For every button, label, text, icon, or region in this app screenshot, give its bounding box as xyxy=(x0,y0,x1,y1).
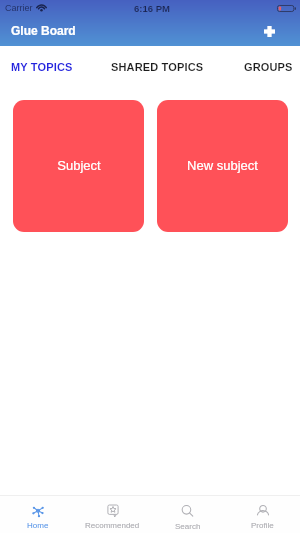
staticText: Home xyxy=(27,521,49,530)
button[interactable]: Add topic xyxy=(258,20,280,42)
button[interactable]: GROUPS xyxy=(224,46,300,88)
button[interactable]: Profile xyxy=(225,496,300,530)
button[interactable]: New subject xyxy=(157,100,288,232)
button[interactable]: SHARED TOPICS xyxy=(92,46,224,88)
button[interactable]: Search xyxy=(150,496,225,531)
staticText: Search xyxy=(175,522,201,531)
staticText: 6:16 PM xyxy=(134,3,170,14)
staticText: Profile xyxy=(251,521,274,530)
button[interactable]: Recommended xyxy=(75,496,150,530)
button[interactable]: Subject xyxy=(13,100,144,232)
staticText: Recommended xyxy=(85,521,140,530)
button[interactable]: MY TOPICS xyxy=(0,46,92,88)
staticText: Subject xyxy=(57,158,101,173)
staticText: Glue Board xyxy=(11,24,76,37)
staticText: MY TOPICS xyxy=(11,61,73,73)
staticText: GROUPS xyxy=(244,61,293,73)
button[interactable]: Home xyxy=(0,496,75,530)
staticText: Carrier xyxy=(5,3,33,13)
staticText: SHARED TOPICS xyxy=(111,61,204,73)
staticText: New subject xyxy=(187,158,258,173)
